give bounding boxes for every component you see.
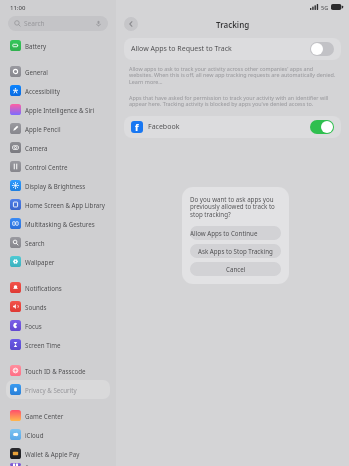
button[interactable]: Allow Apps to Continue Tracking xyxy=(190,226,281,240)
button[interactable]: Notifications xyxy=(6,278,110,297)
staticText: f xyxy=(135,121,139,133)
staticText: Sounds xyxy=(25,303,47,311)
button[interactable]: Display & Brightness xyxy=(6,176,110,195)
button[interactable]: Search xyxy=(8,16,108,31)
staticText: Search xyxy=(24,19,45,28)
button[interactable]: Apps xyxy=(6,463,110,466)
button[interactable]: Focus xyxy=(6,316,110,335)
button[interactable]: General xyxy=(6,62,110,81)
button[interactable]: Game Center xyxy=(6,406,110,425)
staticText: Allow Apps to Request to Track xyxy=(131,44,232,54)
staticText: Tracking xyxy=(216,19,250,30)
staticText: Home Screen & App Library xyxy=(25,201,105,209)
staticText: Notifications xyxy=(25,284,62,292)
staticText: Privacy & Security xyxy=(25,386,77,394)
staticText: Facebook xyxy=(148,122,180,132)
button[interactable]: Ask Apps to Stop Tracking xyxy=(190,244,281,258)
staticText: General xyxy=(25,68,48,76)
button[interactable]: Control Centre xyxy=(6,157,110,176)
button[interactable]: Search xyxy=(6,233,110,252)
staticText: Control Centre xyxy=(25,163,68,171)
staticText: Apple Intelligence & Siri xyxy=(25,106,95,114)
button[interactable]: iCloud xyxy=(6,425,110,444)
staticText: Apple Pencil xyxy=(25,125,61,133)
staticText: Battery xyxy=(25,42,47,50)
button[interactable]: Sounds xyxy=(6,297,110,316)
button[interactable]: Toggle off xyxy=(310,42,334,56)
staticText: 5G xyxy=(321,4,329,11)
button[interactable]: Home Screen & App Library xyxy=(6,195,110,214)
staticText: Allow apps to ask to track your activity… xyxy=(129,65,336,86)
button[interactable]: f xyxy=(124,116,341,138)
staticText: Multitasking & Gestures xyxy=(25,220,95,228)
staticText: Apps xyxy=(25,463,40,466)
staticText: Cancel xyxy=(226,265,246,273)
staticText: Game Center xyxy=(25,412,64,420)
staticText: Ask Apps to Stop Tracking xyxy=(198,247,273,255)
staticText: Apps that have asked for permission to t… xyxy=(129,94,336,108)
staticText: Wallet & Apple Pay xyxy=(25,450,80,458)
button[interactable]: Multitasking & Gestures xyxy=(6,214,110,233)
staticText: 11:00 xyxy=(10,4,26,12)
staticText: Screen Time xyxy=(25,341,61,349)
button[interactable]: Battery xyxy=(6,36,110,55)
staticText: Display & Brightness xyxy=(25,182,86,190)
button[interactable]: Accessibility xyxy=(6,81,110,100)
button[interactable]: Wallpaper xyxy=(6,252,110,271)
staticText: Touch ID & Passcode xyxy=(25,367,86,375)
button[interactable]: Apple Pencil xyxy=(6,119,110,138)
button[interactable]: Back xyxy=(124,17,138,31)
button[interactable]: Touch ID & Passcode xyxy=(6,361,110,380)
button[interactable]: Wallet & Apple Pay xyxy=(6,444,110,463)
button[interactable]: Camera xyxy=(6,138,110,157)
button[interactable]: Cancel xyxy=(190,262,281,276)
staticText: Accessibility xyxy=(25,87,60,95)
staticText: Search xyxy=(25,239,45,247)
staticText: Focus xyxy=(25,322,42,330)
staticText: Camera xyxy=(25,144,48,152)
button[interactable]: Privacy & Security xyxy=(6,380,110,399)
staticText: Wallpaper xyxy=(25,258,55,266)
button[interactable]: Screen Time xyxy=(6,335,110,354)
staticText: Allow Apps to Continue Tracking xyxy=(190,229,281,237)
button[interactable]: Toggle on xyxy=(310,120,334,134)
button[interactable]: Allow Apps to Request to Track xyxy=(124,38,341,60)
staticText: Do you want to ask apps you previously a… xyxy=(190,195,281,219)
staticText: iCloud xyxy=(25,431,44,439)
button[interactable]: Apple Intelligence & Siri xyxy=(6,100,110,119)
